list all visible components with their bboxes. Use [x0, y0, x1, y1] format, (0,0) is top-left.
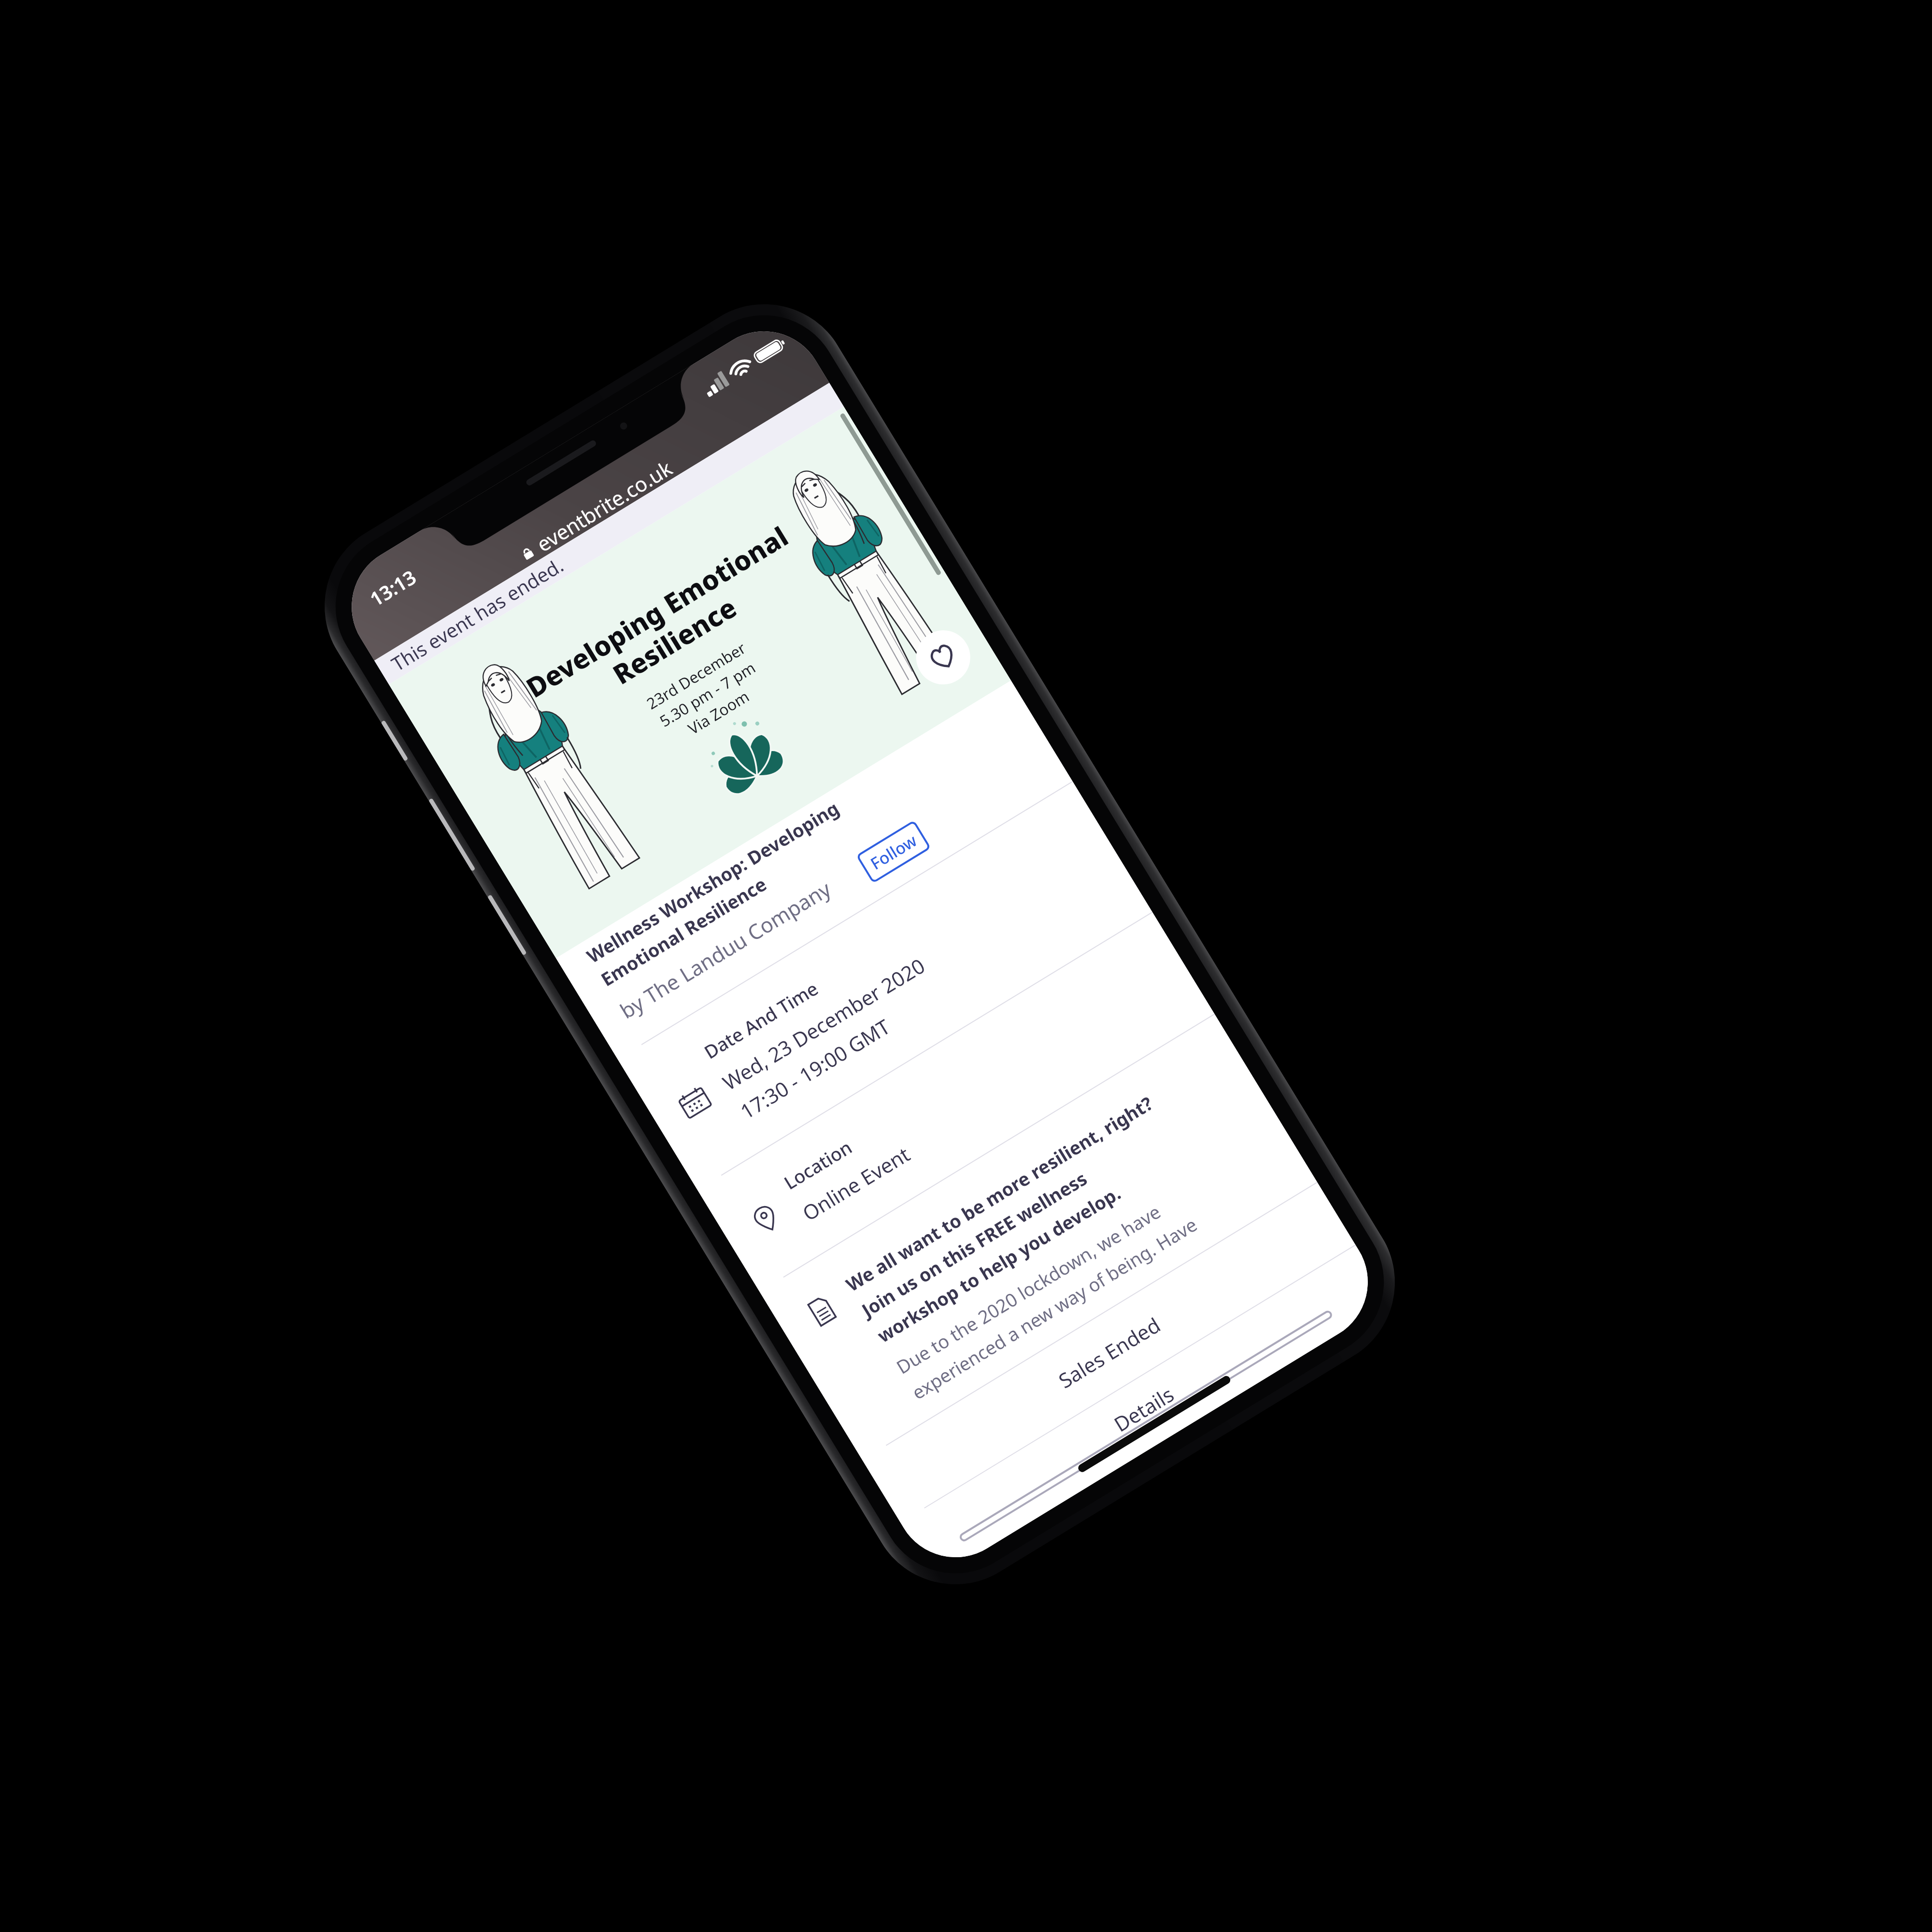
- staticText: Follow: [866, 829, 921, 874]
- staticText: Wellness Workshop: Developing Emotional …: [582, 795, 858, 992]
- staticText: 13:13: [365, 564, 421, 612]
- staticText: Sales Ended: [1053, 1311, 1165, 1394]
- staticText: by The Landuu Company: [615, 874, 836, 1025]
- staticText: Developing Emotional Resilience: [519, 518, 812, 734]
- button[interactable]: Details: [901, 1245, 1386, 1573]
- button[interactable]: eventbrite.co.uk: [504, 446, 687, 577]
- staticText: 23rd December 5.30 pm - 7 pm Via Zoom: [643, 637, 772, 750]
- button[interactable]: Follow: [856, 820, 931, 884]
- button[interactable]: Save event: [906, 620, 980, 695]
- staticText: Due to the 2020 lockdown, we have experi…: [891, 1186, 1202, 1405]
- staticText: This event has ended.: [386, 552, 568, 677]
- staticText: Details: [1109, 1380, 1179, 1438]
- button[interactable]: Sales Ended: [862, 1183, 1355, 1522]
- button[interactable]: Tickets: [958, 1309, 1334, 1543]
- staticText: Wed, 23 December 2020 17:30 - 19:00 GMT: [717, 951, 948, 1125]
- staticText: eventbrite.co.uk: [531, 454, 677, 558]
- staticText: We all want to be more resilient, right?…: [841, 1090, 1188, 1348]
- staticText: Location: [779, 1134, 856, 1195]
- staticText: Online Event: [797, 1140, 915, 1227]
- staticText: Date And Time: [699, 975, 823, 1064]
